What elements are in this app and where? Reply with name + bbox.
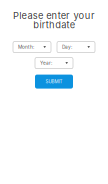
- staticText: Year:: [40, 60, 52, 66]
- staticText: Please enter your: [13, 10, 95, 21]
- button[interactable]: Month:: [13, 42, 51, 53]
- staticText: birthdate: [33, 19, 75, 31]
- button[interactable]: Year:: [35, 58, 73, 69]
- staticText: SUBMIT: [45, 79, 62, 84]
- button[interactable]: SUBMIT: [35, 75, 73, 89]
- button[interactable]: Day:: [57, 42, 95, 53]
- staticText: Month:: [18, 44, 34, 50]
- staticText: Day:: [62, 44, 72, 50]
